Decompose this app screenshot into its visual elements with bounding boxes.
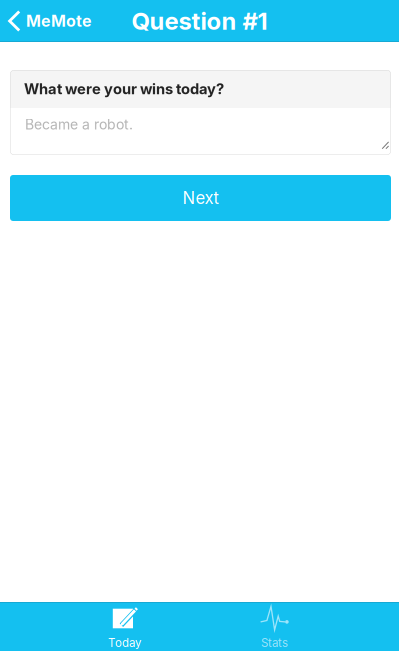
button[interactable]: Today: [49, 602, 199, 651]
staticText: Today: [108, 636, 141, 650]
button[interactable]: Stats: [199, 602, 349, 651]
staticText: What were your wins today?: [24, 80, 224, 98]
button[interactable]: Next: [10, 175, 391, 221]
button[interactable]: MeMote: [0, 0, 102, 42]
staticText: Next: [182, 188, 218, 208]
staticText: Stats: [261, 636, 288, 650]
staticText: Became a robot.: [25, 116, 133, 133]
staticText: MeMote: [26, 11, 92, 31]
staticText: Question #1: [131, 6, 267, 35]
